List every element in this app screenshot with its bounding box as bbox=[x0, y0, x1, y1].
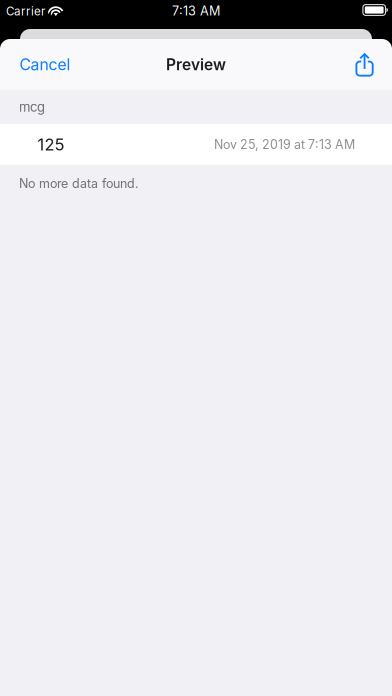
staticText: Nov 25, 2019 at 7:13 AM bbox=[214, 137, 355, 152]
button[interactable]: Cancel bbox=[0, 39, 84, 90]
staticText: 125 bbox=[37, 135, 64, 154]
button[interactable]: 125 bbox=[0, 124, 392, 165]
staticText: Preview bbox=[166, 55, 226, 74]
staticText: Cancel bbox=[19, 55, 70, 74]
staticText: 7:13 AM bbox=[172, 3, 220, 19]
button[interactable]: Share bbox=[341, 39, 392, 90]
staticText: Carrier bbox=[6, 4, 45, 18]
staticText: mcg bbox=[19, 99, 45, 115]
staticText: No more data found. bbox=[19, 176, 139, 191]
